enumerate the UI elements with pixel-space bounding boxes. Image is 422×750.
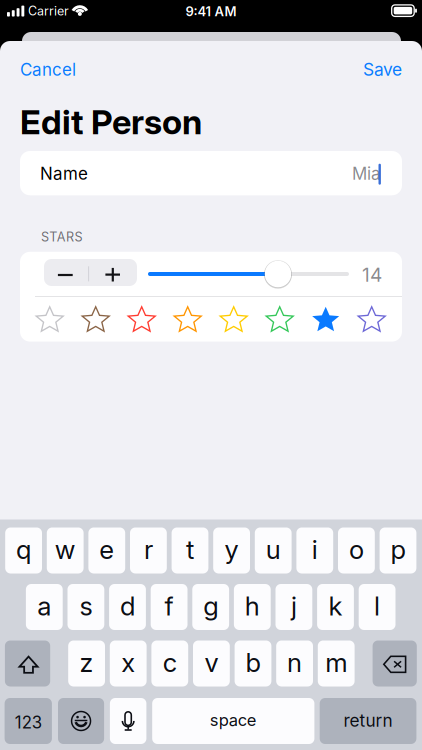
button[interactable]: f: [151, 584, 187, 630]
staticText: q: [16, 534, 31, 565]
button[interactable]: g: [192, 584, 229, 630]
button[interactable]: e: [88, 527, 125, 573]
button[interactable]: Star: [35, 305, 65, 335]
staticText: c: [163, 647, 177, 678]
button[interactable]: p: [380, 527, 416, 573]
staticText: s: [79, 590, 92, 622]
button[interactable]: Star: [357, 305, 387, 335]
staticText: return: [344, 710, 393, 731]
button[interactable]: Space: [152, 698, 314, 744]
staticText: Carrier: [28, 3, 69, 19]
button[interactable]: w: [47, 527, 84, 573]
button[interactable]: Decrease: [44, 259, 137, 286]
button[interactable]: Save: [0, 0, 422, 750]
button[interactable]: l: [359, 584, 395, 630]
staticText: z: [80, 647, 94, 678]
button[interactable]: Dictation: [110, 698, 146, 744]
staticText: m: [325, 647, 347, 678]
button[interactable]: Star: [81, 305, 111, 335]
button[interactable]: Shift: [5, 640, 50, 686]
button[interactable]: Return: [320, 698, 416, 744]
staticText: w: [55, 534, 76, 565]
staticText: f: [165, 590, 174, 622]
button[interactable]: n: [276, 640, 313, 686]
staticText: space: [210, 710, 257, 730]
staticText: k: [328, 590, 342, 622]
staticText: a: [37, 590, 51, 622]
staticText: n: [287, 647, 302, 678]
button[interactable]: o: [338, 527, 375, 573]
button[interactable]: s: [67, 584, 104, 630]
button[interactable]: Increase: [44, 259, 137, 286]
button[interactable]: Star: [219, 305, 249, 335]
button[interactable]: i: [296, 527, 333, 573]
button[interactable]: k: [317, 584, 354, 630]
button[interactable]: Numbers: [5, 698, 52, 744]
staticText: 9:41 AM: [185, 4, 236, 19]
staticText: Cancel: [20, 59, 76, 80]
button[interactable]: Star: [127, 305, 157, 335]
staticText: p: [390, 534, 405, 565]
button[interactable]: Emoji: [58, 698, 104, 744]
button[interactable]: Star: [311, 305, 341, 335]
button[interactable]: Star: [173, 305, 203, 335]
staticText: b: [245, 647, 260, 678]
button[interactable]: y: [213, 527, 250, 573]
staticText: r: [144, 534, 153, 565]
button[interactable]: Cancel: [0, 0, 422, 750]
staticText: o: [349, 534, 364, 565]
button[interactable]: r: [130, 527, 167, 573]
staticText: x: [121, 647, 135, 678]
staticText: e: [99, 534, 114, 565]
button[interactable]: z: [68, 640, 105, 686]
staticText: i: [312, 534, 318, 565]
staticText: Mia: [352, 163, 381, 184]
staticText: STARS: [41, 229, 82, 245]
button[interactable]: j: [275, 584, 312, 630]
button[interactable]: t: [172, 527, 208, 573]
staticText: d: [120, 590, 135, 622]
button[interactable]: c: [151, 640, 188, 686]
button[interactable]: u: [255, 527, 292, 573]
staticText: v: [204, 647, 218, 678]
staticText: h: [245, 590, 260, 622]
staticText: l: [374, 590, 380, 622]
staticText: 123: [15, 712, 42, 733]
button[interactable]: d: [109, 584, 146, 630]
staticText: y: [225, 534, 239, 565]
button[interactable]: h: [234, 584, 271, 630]
button[interactable]: Star: [265, 305, 295, 335]
staticText: Name: [40, 163, 88, 184]
button[interactable]: b: [235, 640, 271, 686]
staticText: Edit Person: [20, 101, 202, 142]
button[interactable]: m: [318, 640, 355, 686]
button[interactable]: a: [26, 584, 63, 630]
staticText: t: [186, 534, 194, 565]
button[interactable]: v: [193, 640, 230, 686]
button[interactable]: x: [110, 640, 147, 686]
staticText: j: [291, 590, 297, 622]
button[interactable]: Delete: [373, 640, 417, 686]
button[interactable]: q: [5, 527, 42, 573]
staticText: 14: [362, 263, 382, 286]
staticText: Save: [363, 59, 402, 80]
staticText: u: [266, 534, 281, 565]
staticText: g: [203, 590, 218, 622]
